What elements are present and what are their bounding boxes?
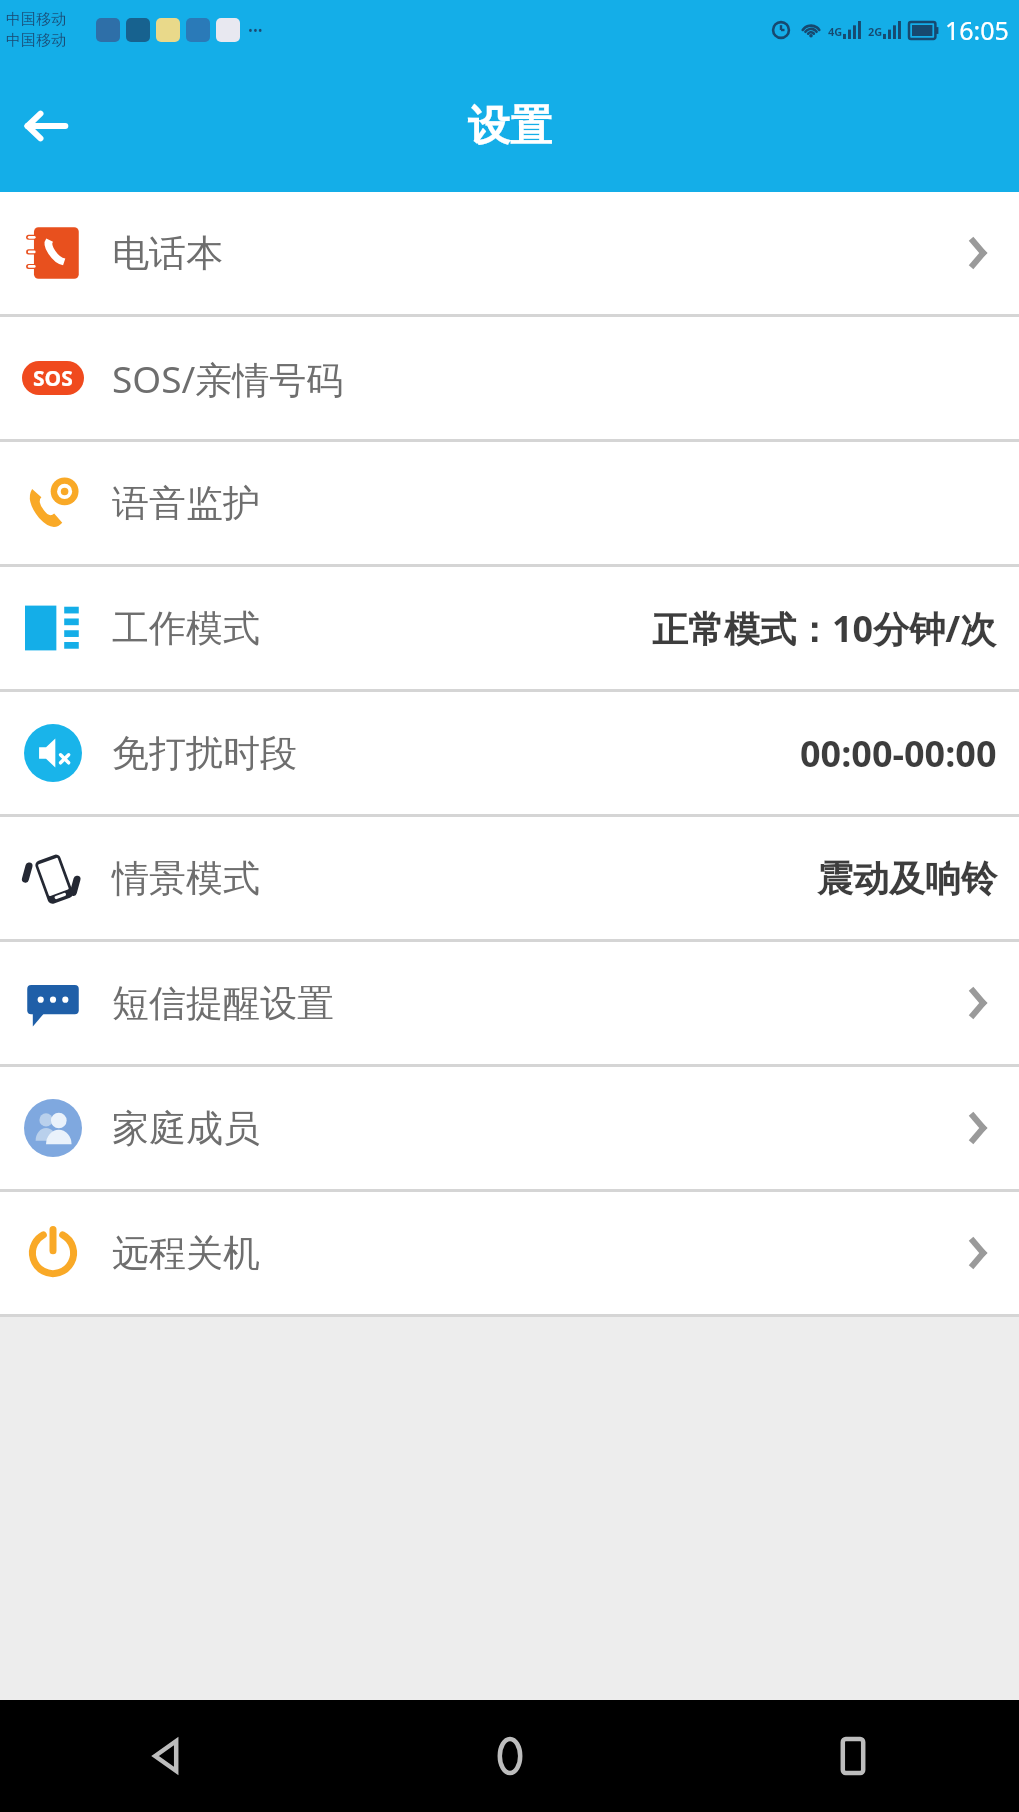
- button[interactable]: 远程关机: [0, 1192, 1019, 1314]
- button[interactable]: 电话本: [0, 192, 1019, 314]
- button[interactable]: 家庭成员: [0, 1067, 1019, 1189]
- button[interactable]: Back: [130, 1720, 202, 1792]
- staticText: 短信提醒设置: [112, 980, 334, 1027]
- button[interactable]: Recent apps: [817, 1720, 889, 1792]
- staticText: 设置: [468, 100, 552, 153]
- button[interactable]: 情景模式: [0, 817, 1019, 939]
- staticText: 16:05: [945, 13, 1009, 47]
- staticText: 2G: [868, 24, 883, 39]
- staticText: SOS/亲情号码: [112, 353, 344, 404]
- staticText: 免打扰时段: [112, 730, 297, 777]
- button[interactable]: Home: [474, 1720, 546, 1792]
- staticText: 震动及响铃: [817, 856, 997, 901]
- staticText: 远程关机: [112, 1230, 260, 1277]
- staticText: •••: [248, 21, 263, 39]
- staticText: 中国移动: [6, 31, 66, 50]
- staticText: 情景模式: [112, 855, 260, 902]
- staticText: 家庭成员: [112, 1105, 260, 1152]
- staticText: 工作模式: [112, 605, 260, 652]
- staticText: SOS: [33, 364, 73, 393]
- button[interactable]: 工作模式: [0, 567, 1019, 689]
- button[interactable]: 短信提醒设置: [0, 942, 1019, 1064]
- button[interactable]: 语音监护: [0, 442, 1019, 564]
- staticText: 4G: [828, 24, 843, 39]
- button[interactable]: SOS: [0, 317, 1019, 439]
- staticText: 00:00-00:00: [800, 729, 997, 778]
- staticText: 电话本: [112, 230, 223, 277]
- staticText: 正常模式：10分钟/次: [652, 604, 997, 653]
- button[interactable]: 免打扰时段: [0, 692, 1019, 814]
- staticText: 中国移动: [6, 10, 66, 29]
- staticText: 语音监护: [112, 480, 260, 527]
- button[interactable]: Back: [14, 94, 78, 158]
